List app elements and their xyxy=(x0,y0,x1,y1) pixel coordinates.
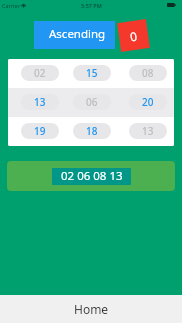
staticText: 0 xyxy=(129,28,138,44)
button[interactable]: 20 xyxy=(129,94,167,110)
staticText: Home xyxy=(74,301,109,317)
button[interactable]: Home xyxy=(0,295,182,323)
button[interactable]: 02 06 08 13 xyxy=(52,168,131,185)
button[interactable]: 18 xyxy=(73,123,111,139)
button[interactable]: 02 xyxy=(21,65,59,81)
button[interactable]: 08 xyxy=(129,65,167,81)
other: Battery xyxy=(167,3,176,7)
staticText: Carrier xyxy=(2,2,20,9)
button[interactable]: 15 xyxy=(73,65,111,81)
button[interactable]: 0 xyxy=(117,19,150,52)
button[interactable]: Ascending xyxy=(34,21,115,49)
staticText: 20 xyxy=(142,95,154,109)
staticText: 08 xyxy=(142,66,154,80)
staticText: 13 xyxy=(142,124,154,138)
staticText: 02 06 08 13 xyxy=(61,168,123,184)
button[interactable]: 13 xyxy=(129,123,167,139)
staticText: 5:57 PM xyxy=(81,2,102,9)
staticText: Ascending xyxy=(49,26,106,42)
staticText: 19 xyxy=(34,124,46,138)
button[interactable]: 19 xyxy=(21,123,59,139)
staticText: 18 xyxy=(86,124,98,138)
staticText: 13 xyxy=(34,95,46,109)
staticText: 02 xyxy=(34,66,46,80)
staticText: 15 xyxy=(86,66,98,80)
staticText: 06 xyxy=(86,95,98,109)
button[interactable]: 13 xyxy=(21,94,59,110)
button[interactable]: 06 xyxy=(73,94,111,110)
other: Wi-Fi xyxy=(21,3,26,8)
